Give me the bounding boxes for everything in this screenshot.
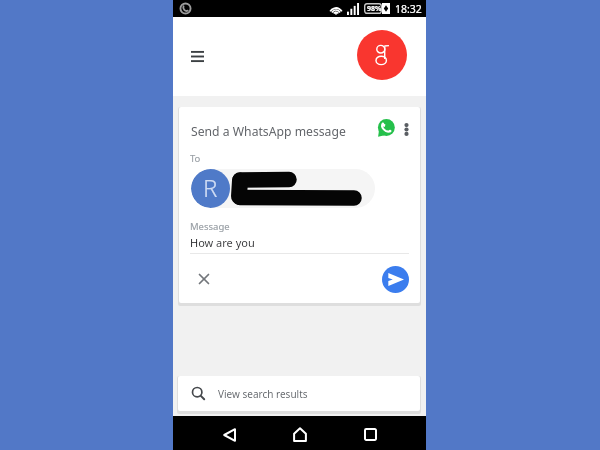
staticText: How are you bbox=[190, 235, 255, 250]
button[interactable]: Home bbox=[285, 420, 314, 449]
button[interactable]: View search results bbox=[178, 376, 420, 411]
staticText: Send a WhatsApp message bbox=[191, 123, 346, 140]
button[interactable]: Send bbox=[382, 266, 409, 293]
button[interactable]: Google account bbox=[357, 30, 407, 80]
staticText: Message bbox=[190, 220, 230, 233]
button[interactable]: Dismiss bbox=[192, 267, 216, 291]
button[interactable]: Back bbox=[215, 420, 244, 449]
button[interactable]: More options bbox=[396, 119, 417, 140]
button[interactable]: WhatsApp bbox=[375, 117, 396, 138]
button[interactable]: Menu bbox=[181, 40, 214, 73]
staticText: View search results bbox=[218, 387, 308, 401]
staticText: To bbox=[190, 152, 201, 165]
staticText: 18:32 bbox=[395, 2, 422, 16]
staticText: R bbox=[203, 171, 218, 204]
button[interactable]: R bbox=[191, 169, 375, 208]
staticText: 98% bbox=[367, 4, 382, 14]
button[interactable]: Recents bbox=[356, 420, 385, 449]
